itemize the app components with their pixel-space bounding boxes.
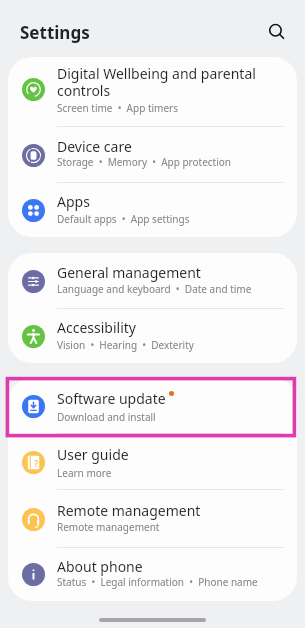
button[interactable]: Digital Wellbeing and parental controls xyxy=(8,57,297,127)
staticText: Remote management xyxy=(57,501,201,520)
button[interactable]: Device care xyxy=(8,127,297,183)
staticText: About phone xyxy=(57,557,143,576)
staticText: Digital Wellbeing and parental controls xyxy=(57,64,256,100)
staticText: Learn more xyxy=(57,466,112,480)
button[interactable]: Accessibility xyxy=(8,309,297,363)
staticText: General management xyxy=(57,263,201,282)
staticText: Remote management xyxy=(57,520,160,534)
button[interactable]: ? xyxy=(8,434,297,490)
staticText: Default apps • App settings xyxy=(57,212,190,226)
staticText: Storage • Memory • App protection xyxy=(57,155,232,169)
staticText: Device care xyxy=(57,137,132,156)
staticText: Settings xyxy=(20,21,90,44)
staticText: Download and install xyxy=(57,410,156,424)
button[interactable]: About phone xyxy=(8,548,297,601)
staticText: Language and keyboard • Date and time xyxy=(57,282,252,296)
staticText: ? xyxy=(34,457,39,469)
button[interactable]: Software update xyxy=(8,378,297,434)
staticText: Screen time • App timers xyxy=(57,101,179,115)
staticText: Accessibility xyxy=(57,318,136,337)
staticText: User guide xyxy=(57,445,129,464)
staticText: Software update xyxy=(57,389,166,408)
button[interactable]: General management xyxy=(8,253,297,309)
staticText: Apps xyxy=(57,192,90,211)
button[interactable]: Search xyxy=(258,13,296,51)
button[interactable]: Remote management xyxy=(8,490,297,548)
staticText: Vision • Hearing • Dexterity xyxy=(57,338,194,352)
button[interactable]: Apps xyxy=(8,183,297,237)
staticText: Status • Legal information • Phone name xyxy=(57,575,258,589)
